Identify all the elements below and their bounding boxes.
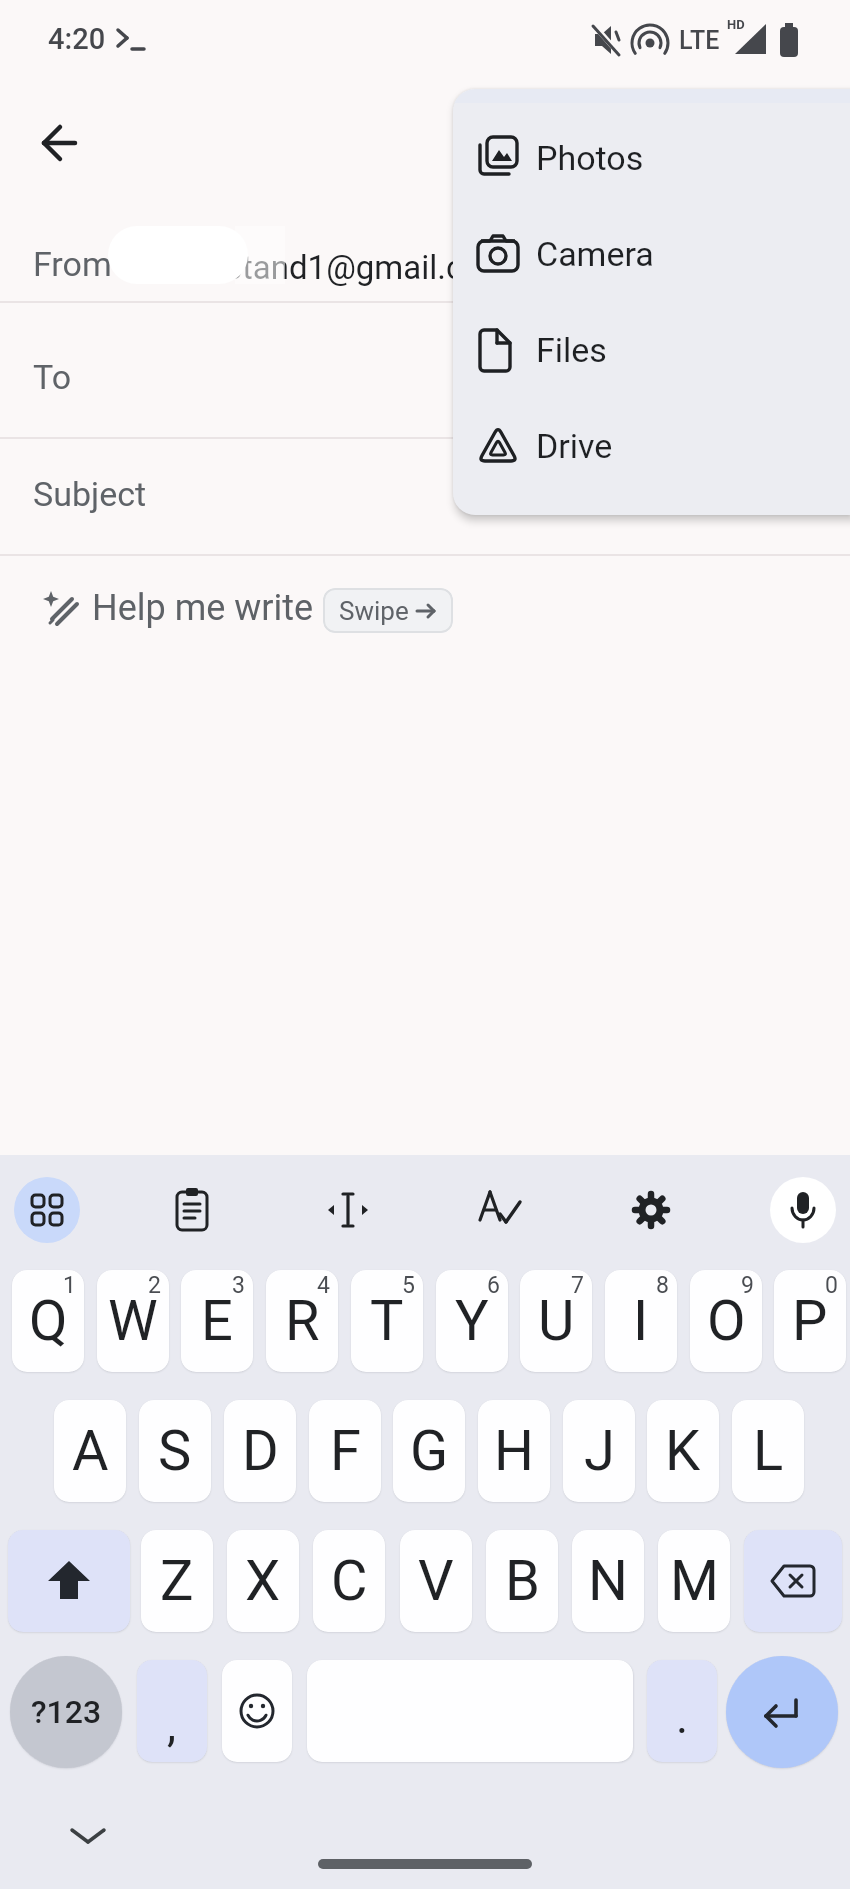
button[interactable]: H <box>478 1400 550 1502</box>
button[interactable]: Z <box>141 1530 213 1632</box>
button[interactable] <box>30 578 310 636</box>
staticText: Q <box>29 1288 68 1354</box>
button[interactable]: Camera <box>453 206 850 302</box>
staticText: stand1@gmail.co <box>225 248 483 287</box>
button[interactable] <box>744 1530 842 1632</box>
button[interactable]: K <box>647 1400 719 1502</box>
staticText: A <box>72 1418 109 1484</box>
button[interactable] <box>222 1660 292 1762</box>
button[interactable]: M <box>658 1530 730 1632</box>
button[interactable] <box>467 1177 533 1243</box>
button[interactable] <box>618 1177 684 1243</box>
button[interactable]: F <box>309 1400 381 1502</box>
button[interactable]: , <box>137 1660 207 1762</box>
button[interactable] <box>0 439 850 554</box>
staticText: V <box>418 1548 454 1614</box>
staticText: Y <box>455 1288 489 1354</box>
staticText: E <box>201 1288 233 1354</box>
staticText: 2 <box>148 1272 161 1299</box>
button[interactable]: A <box>54 1400 126 1502</box>
staticText: N <box>588 1548 628 1614</box>
button[interactable]: Drive <box>453 398 850 494</box>
button[interactable] <box>726 1656 838 1768</box>
button[interactable]: ?123 <box>10 1656 122 1768</box>
staticText: ?123 <box>31 1693 102 1731</box>
button[interactable]: E <box>181 1270 253 1372</box>
staticText: W <box>108 1288 158 1354</box>
staticText: LTE <box>679 26 720 55</box>
staticText: , <box>167 1698 177 1752</box>
button[interactable]: G <box>393 1400 465 1502</box>
button[interactable]: L <box>732 1400 804 1502</box>
staticText: 5 <box>402 1272 415 1299</box>
staticText: U <box>538 1288 575 1354</box>
staticText: Photos <box>536 138 644 178</box>
button[interactable]: Photos <box>453 110 850 206</box>
button[interactable]: W <box>97 1270 169 1372</box>
staticText: T <box>370 1288 404 1354</box>
button[interactable]: C <box>313 1530 385 1632</box>
staticText: C <box>331 1548 368 1614</box>
button[interactable]: Files <box>453 302 850 398</box>
staticText: Help me write <box>92 587 314 629</box>
button[interactable] <box>8 1530 130 1632</box>
staticText: Camera <box>536 234 654 274</box>
staticText: D <box>242 1418 279 1484</box>
button[interactable]: V <box>400 1530 472 1632</box>
button[interactable] <box>0 217 850 302</box>
staticText: Drive <box>536 426 613 466</box>
button[interactable] <box>315 1177 381 1243</box>
staticText: 8 <box>656 1272 669 1299</box>
staticText: Swipe <box>339 596 409 626</box>
button[interactable]: T <box>351 1270 423 1372</box>
staticText: M <box>670 1548 719 1614</box>
button[interactable]: R <box>266 1270 338 1372</box>
staticText: 4:20 <box>48 22 106 56</box>
button[interactable] <box>770 1177 836 1243</box>
button[interactable]: J <box>563 1400 635 1502</box>
staticText: R <box>285 1288 320 1354</box>
button[interactable]: O <box>690 1270 762 1372</box>
staticText: P <box>792 1288 828 1354</box>
button[interactable]: P <box>774 1270 846 1372</box>
button[interactable]: X <box>227 1530 299 1632</box>
staticText: X <box>245 1548 281 1614</box>
staticText: O <box>707 1288 746 1354</box>
button[interactable]: N <box>572 1530 644 1632</box>
button[interactable] <box>20 105 96 181</box>
staticText: F <box>330 1418 361 1484</box>
staticText: H <box>494 1418 534 1484</box>
button[interactable]: U <box>520 1270 592 1372</box>
staticText: 6 <box>487 1272 500 1299</box>
staticText: 9 <box>741 1272 754 1299</box>
staticText: J <box>584 1418 615 1484</box>
staticText: Files <box>536 330 607 370</box>
staticText: 3 <box>232 1272 245 1299</box>
button[interactable] <box>164 1177 230 1243</box>
staticText: B <box>505 1548 540 1614</box>
staticText: L <box>753 1418 784 1484</box>
button[interactable]: Swipe <box>323 588 453 633</box>
button[interactable] <box>0 303 850 437</box>
button[interactable]: B <box>486 1530 558 1632</box>
staticText: I <box>633 1288 649 1354</box>
button[interactable]: D <box>224 1400 296 1502</box>
button[interactable]: Q <box>12 1270 84 1372</box>
button[interactable]: . <box>647 1660 717 1762</box>
staticText: G <box>410 1418 449 1484</box>
button[interactable] <box>14 1177 80 1243</box>
button[interactable] <box>60 1816 116 1856</box>
button[interactable]: Y <box>436 1270 508 1372</box>
staticText: HD <box>727 17 745 32</box>
button[interactable]: I <box>605 1270 677 1372</box>
staticText: S <box>158 1418 192 1484</box>
staticText: 7 <box>571 1272 584 1299</box>
staticText: 0 <box>825 1272 838 1299</box>
staticText: K <box>665 1418 701 1484</box>
button[interactable]: S <box>139 1400 211 1502</box>
staticText: . <box>676 1690 689 1744</box>
staticText: 1 <box>63 1272 76 1299</box>
staticText: Subject <box>33 474 147 514</box>
staticText: Z <box>160 1548 194 1614</box>
